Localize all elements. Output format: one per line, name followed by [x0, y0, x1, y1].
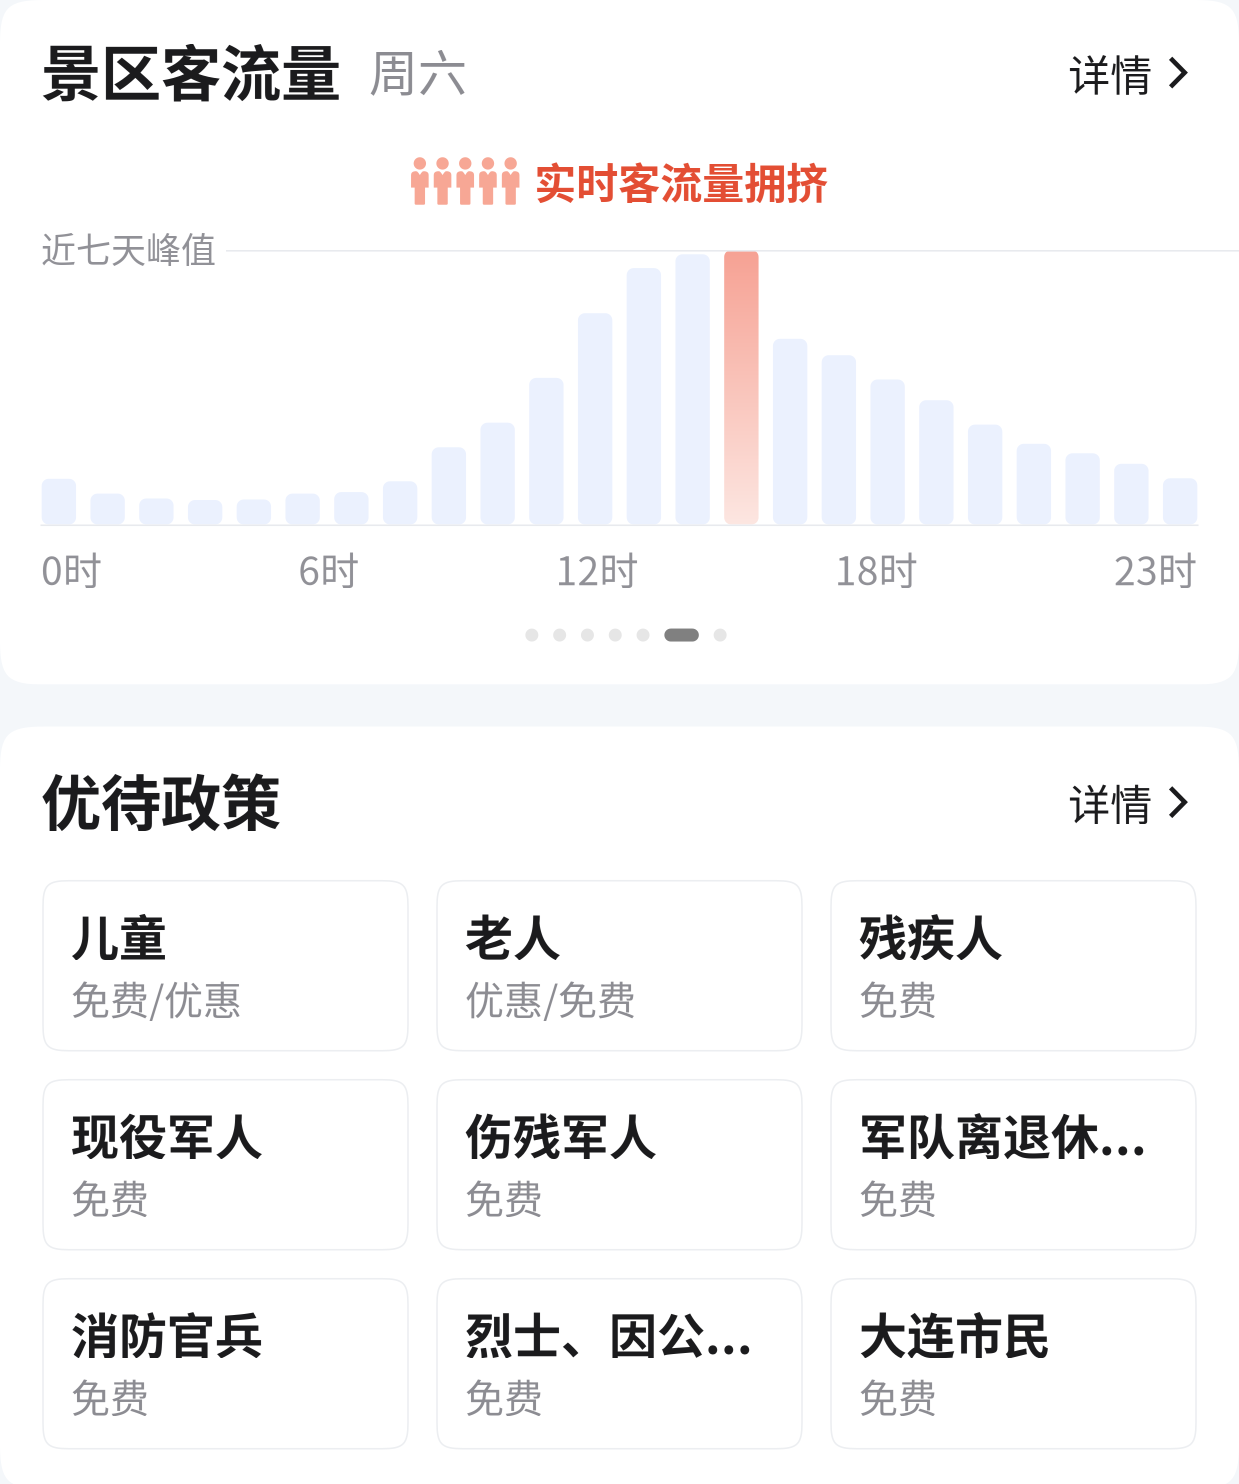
staticText: 优待政策 — [41, 756, 281, 843]
staticText: 消防官兵 — [71, 1298, 263, 1367]
staticText: 周六 — [369, 34, 467, 105]
staticText: 详情 — [1068, 772, 1152, 832]
staticText: 免费 — [71, 1367, 149, 1424]
button[interactable]: 烈士、因公... — [437, 1279, 802, 1449]
button[interactable]: 详情 — [1068, 33, 1187, 106]
button[interactable]: 优待政策 — [41, 756, 281, 843]
staticText: 近七天峰值 — [41, 222, 216, 273]
button[interactable]: 大连市民 — [831, 1279, 1196, 1449]
staticText: 优惠/免费 — [465, 969, 636, 1026]
staticText: 免费 — [859, 1367, 937, 1424]
staticText: 老人 — [465, 900, 561, 969]
staticText: 军队离退休... — [859, 1099, 1147, 1168]
staticText: 详情 — [1068, 42, 1152, 103]
staticText: 12时 — [555, 540, 638, 597]
staticText: 6时 — [298, 540, 359, 597]
staticText: 免费 — [859, 1168, 937, 1225]
button[interactable]: 现役军人 — [43, 1080, 408, 1250]
staticText: 免费/优惠 — [71, 969, 242, 1026]
staticText: 现役军人 — [71, 1099, 263, 1168]
staticText: 免费 — [465, 1168, 543, 1225]
staticText: 大连市民 — [859, 1298, 1051, 1367]
staticText: 18时 — [835, 540, 918, 597]
staticText: 烈士、因公... — [465, 1298, 753, 1367]
staticText: 伤残军人 — [465, 1099, 657, 1168]
staticText: 实时客流量拥挤 — [524, 150, 828, 211]
staticText: 儿童 — [71, 900, 167, 969]
staticText: 免费 — [859, 969, 937, 1026]
staticText: 0时 — [41, 540, 102, 597]
staticText: 免费 — [465, 1367, 543, 1424]
button[interactable]: 老人 — [437, 881, 802, 1051]
button[interactable]: 军队离退休... — [831, 1080, 1196, 1250]
staticText: 景区客流量 — [41, 26, 341, 113]
button[interactable]: 消防官兵 — [43, 1279, 408, 1449]
button[interactable]: 残疾人 — [831, 881, 1196, 1051]
button[interactable]: 伤残军人 — [437, 1080, 802, 1250]
staticText: 残疾人 — [859, 900, 1003, 969]
button[interactable]: 儿童 — [43, 881, 408, 1051]
staticText: 免费 — [71, 1168, 149, 1225]
staticText: 23时 — [1114, 540, 1197, 597]
button[interactable]: 景区客流量 — [41, 26, 467, 113]
button[interactable]: 详情 — [1068, 763, 1187, 835]
